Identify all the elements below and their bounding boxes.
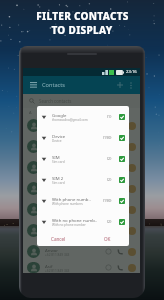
staticText: With no phone numb.. [52,217,98,223]
button[interactable]: Aziz [27,220,136,241]
staticText: With no phone number [52,223,86,227]
staticText: (2) [107,156,112,161]
button[interactable]: Toggle With no phone numb.. [119,219,125,225]
button[interactable]: Open navigation menu [28,80,38,90]
button[interactable]: More options [126,80,136,90]
button[interactable]: With phone numb.. [37,190,129,211]
button[interactable]: Azam [27,115,136,136]
staticText: (190) [103,135,112,140]
button[interactable]: Toggle SIM [119,156,125,162]
button[interactable]: Toggle Google [119,114,125,120]
staticText: (190) [103,198,112,203]
button[interactable]: Asif [27,262,136,273]
button[interactable]: Toggle SIM 2 [119,177,125,183]
button[interactable]: OK [101,233,114,245]
button[interactable]: Arif [27,199,136,220]
button[interactable]: SIM [37,148,129,169]
button[interactable]: Toggle With phone numb.. [119,198,125,204]
staticText: SIM [52,154,60,160]
staticText: SIM 2 [52,175,64,181]
button[interactable]: Device [37,127,129,148]
staticText: 23:16 [126,69,137,75]
button[interactable]: Ali [27,157,136,178]
staticText: OK [104,236,111,242]
staticText: (1) [107,114,112,119]
staticText: Google [52,112,67,118]
staticText: Sim card [52,181,65,185]
staticText: Anwar [45,247,58,253]
button[interactable]: Add contact [115,80,125,90]
staticText: FILTER CONTACTS [36,9,129,23]
staticText: Device [52,133,66,139]
staticText: Cancel [51,236,66,242]
button[interactable]: Toggle Device [119,135,125,141]
staticText: (2) [107,219,112,224]
button[interactable]: Ahmad [27,136,136,157]
staticText: With phone numbers [52,202,83,206]
button[interactable]: With no phone numb.. [37,211,129,232]
button[interactable]: Amir [27,178,136,199]
staticText: Search contacts [39,98,72,104]
button[interactable]: Google [37,106,129,127]
staticText: A [29,110,32,115]
staticText: TO DISPLAY [51,23,113,37]
staticText: thomasaliva@gmail.com [52,118,88,122]
staticText: Sim card [52,160,65,164]
staticText: +62 811 849 343 [45,269,70,273]
staticText: With phone numb.. [52,196,91,202]
staticText: (2) [107,177,112,182]
staticText: Device [52,139,62,143]
button[interactable]: SIM 2 [37,169,129,190]
staticText: Contacts [42,81,65,89]
button[interactable]: Cancel [48,233,69,245]
staticText: Asif [45,263,53,269]
staticText: +62 811 849 343 [45,253,70,257]
button[interactable]: Anwar [27,241,136,262]
